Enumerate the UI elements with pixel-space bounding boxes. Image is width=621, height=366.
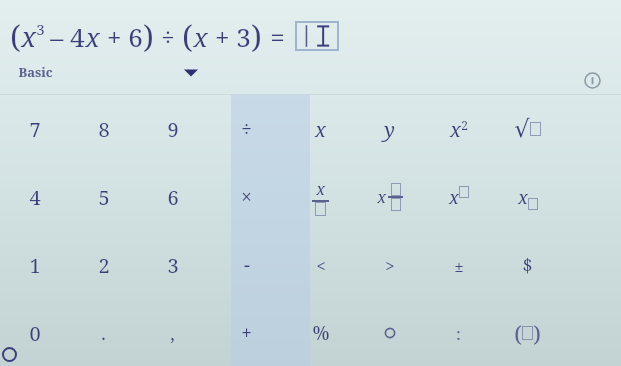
button[interactable]: x squared <box>424 95 493 163</box>
staticText: + <box>241 320 252 346</box>
button[interactable]: divide <box>207 95 286 163</box>
staticText: ± <box>454 254 464 277</box>
staticText: √ <box>514 115 530 143</box>
button[interactable]: degree <box>355 299 424 366</box>
staticText: 8 <box>98 116 110 143</box>
staticText: ) <box>143 16 154 57</box>
button[interactable]: 8 <box>69 95 138 163</box>
staticText: 9 <box>167 116 179 143</box>
staticText: 1 <box>29 252 41 279</box>
staticText: 7 <box>29 116 41 143</box>
staticText: + 6 <box>100 19 143 54</box>
staticText: Basic <box>18 63 53 81</box>
button[interactable]: 6 <box>138 163 207 231</box>
staticText: ÷ <box>161 20 175 53</box>
staticText: ) <box>251 16 262 57</box>
staticText: 3 <box>36 19 45 39</box>
staticText: $ <box>522 253 533 278</box>
staticText: ÷ <box>241 116 252 142</box>
staticText: > <box>385 254 395 277</box>
button[interactable]: 5 <box>69 163 138 231</box>
staticText: y <box>384 116 395 143</box>
button[interactable]: Answer field <box>295 21 339 51</box>
button[interactable]: 1 <box>0 231 69 299</box>
staticText: < <box>316 254 326 277</box>
staticText: x <box>315 116 326 143</box>
staticText: 2 <box>461 117 468 133</box>
staticText: x <box>193 19 208 54</box>
staticText: 5 <box>98 184 110 211</box>
staticText: x <box>449 185 459 210</box>
button[interactable]: x to the power <box>424 163 493 231</box>
staticText: ( <box>182 16 193 57</box>
staticText: % <box>312 320 330 346</box>
button[interactable]: less than <box>286 231 355 299</box>
staticText: x <box>316 178 325 200</box>
staticText: 3 <box>167 252 179 279</box>
button[interactable]: comma <box>138 299 207 366</box>
button[interactable]: 3 <box>138 231 207 299</box>
button[interactable]: 4 <box>0 163 69 231</box>
staticText: x <box>85 19 100 54</box>
staticText: x <box>377 186 386 208</box>
button[interactable]: mixed fraction <box>355 163 424 231</box>
button[interactable]: Info <box>579 67 605 93</box>
button[interactable]: 2 <box>69 231 138 299</box>
staticText: 4 <box>29 184 41 211</box>
button[interactable]: 9 <box>138 95 207 163</box>
button[interactable]: x <box>286 95 355 163</box>
button[interactable]: multiply <box>207 163 286 231</box>
button[interactable]: 0 <box>0 299 69 366</box>
button[interactable]: 7 <box>0 95 69 163</box>
button[interactable]: plus <box>207 299 286 366</box>
staticText: - <box>244 252 250 278</box>
staticText: 2 <box>98 252 110 279</box>
button[interactable]: x subscript <box>493 163 562 231</box>
button[interactable]: minus <box>207 231 286 299</box>
button[interactable]: greater than <box>355 231 424 299</box>
staticText: : <box>456 322 461 345</box>
staticText: , <box>170 321 175 346</box>
staticText: 6 <box>167 184 179 211</box>
button[interactable]: colon <box>424 299 493 366</box>
button[interactable]: dollar <box>493 231 562 299</box>
button[interactable]: parentheses <box>493 299 562 366</box>
staticText: + 3 <box>208 19 251 54</box>
staticText: 0 <box>29 320 41 347</box>
button[interactable]: plus or minus <box>424 231 493 299</box>
staticText: x <box>450 116 461 143</box>
button[interactable]: y <box>355 95 424 163</box>
button[interactable]: square root <box>493 95 562 163</box>
staticText: ( <box>514 318 522 348</box>
button[interactable]: percent <box>286 299 355 366</box>
staticText: = <box>270 19 285 54</box>
staticText: . <box>101 321 106 346</box>
button[interactable]: decimal point <box>69 299 138 366</box>
staticText: – 4 <box>50 19 85 54</box>
staticText: x <box>21 18 36 55</box>
staticText: ( <box>10 16 21 57</box>
staticText: x <box>518 185 528 210</box>
button[interactable]: fraction x over blank <box>286 163 355 231</box>
button[interactable]: Basic <box>18 63 198 81</box>
staticText: × <box>241 184 252 210</box>
staticText: ) <box>533 318 541 348</box>
